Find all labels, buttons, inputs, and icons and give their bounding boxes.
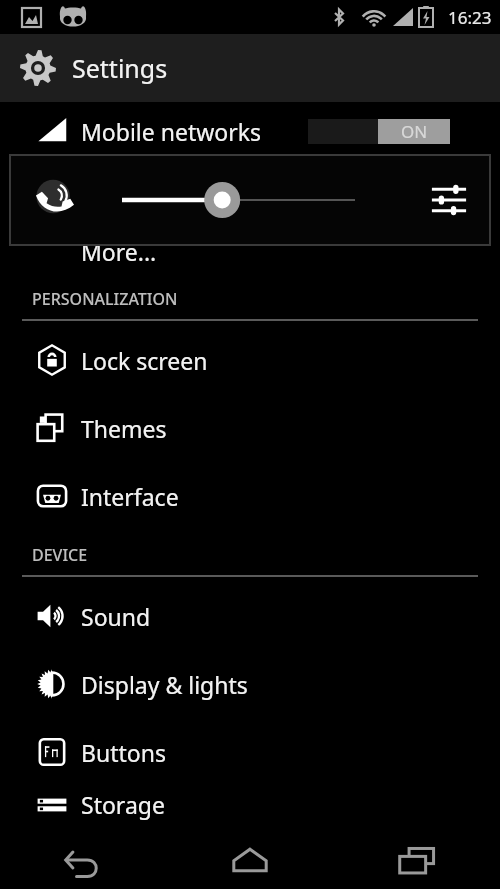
staticText: Lock screen xyxy=(81,345,208,376)
staticText: PERSONALIZATION xyxy=(32,288,178,310)
button[interactable]: Sound xyxy=(0,582,500,650)
button[interactable]: ON xyxy=(308,119,450,144)
button[interactable]: Display & lights xyxy=(0,650,500,718)
staticText: 16:23 xyxy=(448,6,492,29)
button[interactable]: Themes xyxy=(0,394,500,462)
button[interactable]: Back xyxy=(0,830,166,889)
button[interactable]: Mobile networks xyxy=(0,102,500,160)
staticText: Settings xyxy=(72,51,168,85)
staticText: Buttons xyxy=(81,737,166,768)
button[interactable]: Interface xyxy=(0,462,500,530)
staticText: Interface xyxy=(81,481,179,512)
button[interactable]: Home xyxy=(166,830,333,889)
other: Sound settings xyxy=(430,181,468,219)
button[interactable]: Data usage xyxy=(0,160,500,228)
button[interactable]: Call volume xyxy=(10,155,490,245)
staticText: ON xyxy=(401,120,428,143)
staticText: DEVICE xyxy=(32,544,88,566)
staticText: More... xyxy=(81,236,157,267)
staticText: Sound xyxy=(81,601,151,632)
button[interactable]: Settings xyxy=(0,34,500,102)
button[interactable]: Recent apps xyxy=(333,830,500,889)
button[interactable]: More... xyxy=(0,228,500,274)
button[interactable]: Lock screen xyxy=(0,326,500,394)
other: Call volume xyxy=(32,178,76,222)
staticText: Themes xyxy=(81,413,167,444)
staticText: Data usage xyxy=(81,179,204,210)
staticText: Mobile networks xyxy=(81,116,262,147)
staticText: Display & lights xyxy=(81,669,248,700)
button[interactable]: Storage xyxy=(0,786,500,823)
button[interactable]: Buttons xyxy=(0,718,500,786)
staticText: Storage xyxy=(81,789,165,820)
